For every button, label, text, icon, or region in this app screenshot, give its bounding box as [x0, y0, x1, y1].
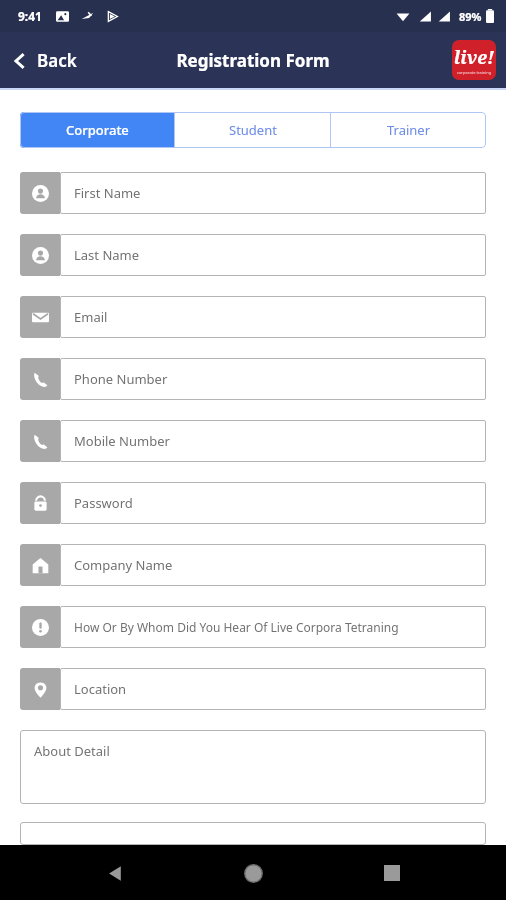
staticText: How Or By Whom Did You Hear Of Live Corp… — [74, 619, 399, 635]
button[interactable]: Back — [0, 41, 91, 80]
button[interactable]: Home — [229, 849, 277, 897]
button[interactable]: Student — [175, 112, 330, 148]
button[interactable] — [20, 822, 486, 845]
staticText: live! — [454, 45, 495, 70]
button[interactable]: Mobile Number — [20, 420, 486, 462]
button[interactable]: Back — [91, 849, 139, 897]
staticText: Last Name — [74, 246, 140, 264]
staticText: Location — [74, 680, 127, 698]
staticText: Company Name — [74, 556, 173, 574]
button[interactable]: First Name — [20, 172, 486, 214]
staticText: Registration Form — [176, 49, 330, 72]
button[interactable]: Last Name — [20, 234, 486, 276]
button[interactable]: Recent apps — [368, 849, 416, 897]
staticText: Phone Number — [74, 370, 168, 388]
button[interactable]: Location — [20, 668, 486, 710]
button[interactable]: Phone Number — [20, 358, 486, 400]
staticText: corporate training — [457, 70, 492, 75]
staticText: Mobile Number — [74, 432, 170, 450]
button[interactable]: Company Name — [20, 544, 486, 586]
staticText: Student — [229, 121, 277, 139]
button[interactable]: How Or By Whom Did You Hear Of Live Corp… — [20, 606, 486, 648]
staticText: 9:41 — [18, 8, 42, 24]
staticText: About Detail — [34, 742, 110, 760]
button[interactable]: Corporate — [20, 112, 174, 148]
staticText: Email — [74, 308, 108, 326]
button[interactable]: Trainer — [331, 112, 486, 148]
staticText: Password — [74, 494, 133, 512]
staticText: Corporate — [66, 121, 129, 139]
button[interactable]: Email — [20, 296, 486, 338]
button[interactable]: Password — [20, 482, 486, 524]
button[interactable]: About Detail — [20, 730, 486, 804]
staticText: Back — [37, 49, 77, 72]
staticText: Trainer — [387, 121, 431, 139]
staticText: 89% — [459, 9, 482, 24]
staticText: First Name — [74, 184, 141, 202]
button[interactable]: Live Corporate Training logo — [452, 40, 496, 80]
